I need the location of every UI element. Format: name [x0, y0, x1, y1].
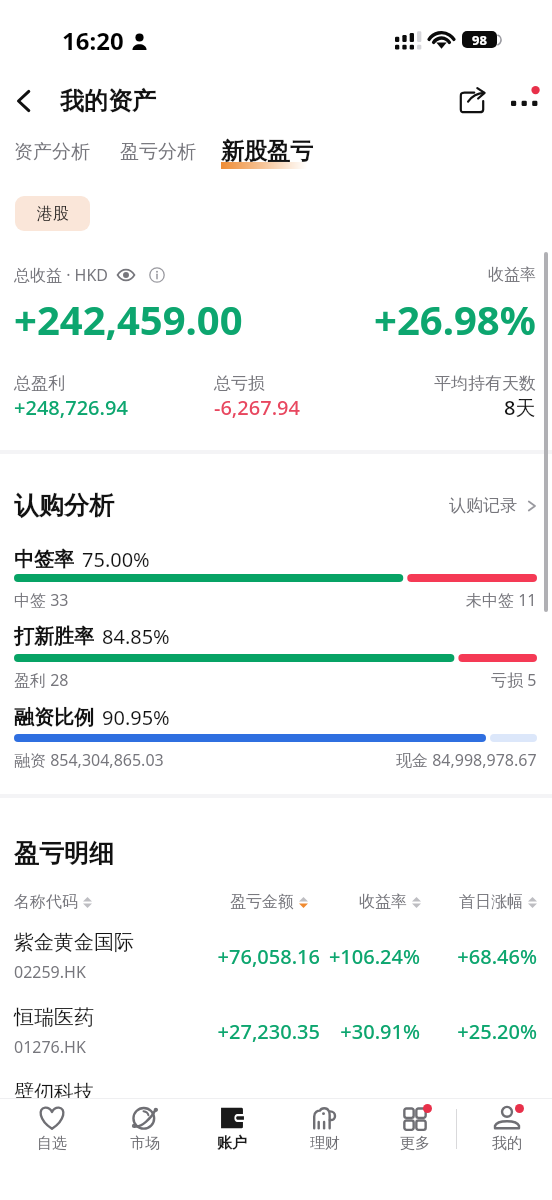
- button[interactable]: 自选: [12, 1098, 92, 1153]
- staticText: +76,058.16: [192, 943, 320, 970]
- staticText: 总收益 · HKD: [14, 264, 109, 286]
- staticText: +106.24%: [320, 943, 420, 970]
- staticText: 02252.HK: [14, 1111, 86, 1133]
- staticText: 融资 854,304,865.03: [14, 749, 164, 771]
- staticText: +30.91%: [320, 1018, 420, 1045]
- button[interactable]: 新股盈亏: [221, 137, 313, 168]
- staticText: 总盈利: [14, 373, 65, 394]
- button[interactable]: 收益率: [308, 892, 421, 912]
- staticText: 紫金黄金国际: [14, 930, 134, 955]
- staticText: 融资比例: [14, 705, 94, 730]
- staticText: 恒瑞医药: [14, 1005, 94, 1030]
- staticText: +248,726.94: [14, 394, 128, 421]
- staticText: 亏损 5: [491, 669, 537, 691]
- button[interactable]: Info: [149, 267, 165, 283]
- staticText: 认购分析: [14, 490, 114, 521]
- staticText: 我的资产: [60, 86, 156, 116]
- staticText: 90.95%: [102, 704, 170, 731]
- staticText: 收益率: [488, 265, 536, 285]
- staticText: 我的: [492, 1134, 522, 1153]
- button[interactable]: 紫金黄金国际: [0, 919, 552, 994]
- staticText: 中签率: [14, 547, 74, 572]
- button[interactable]: 恒瑞医药: [0, 994, 552, 1069]
- staticText: +24,688.00: [192, 1093, 320, 1120]
- staticText: 资产分析: [14, 140, 90, 164]
- button[interactable]: 壁仞科技: [0, 1069, 552, 1144]
- button[interactable]: 首日涨幅: [421, 892, 537, 912]
- staticText: +18.35%: [320, 1093, 420, 1120]
- staticText: -6,267.94: [214, 394, 300, 421]
- staticText: +27,230.35: [192, 1018, 320, 1045]
- button[interactable]: 盈亏分析: [120, 134, 196, 170]
- staticText: 港股: [37, 204, 69, 224]
- staticText: +26.98%: [374, 292, 536, 346]
- staticText: 新股盈亏: [221, 137, 313, 166]
- staticText: +68.46%: [420, 943, 537, 970]
- button[interactable]: 盈亏金额: [184, 892, 308, 912]
- button[interactable]: 更多: [375, 1098, 455, 1153]
- button[interactable]: 资产分析: [14, 134, 90, 170]
- button[interactable]: 认购记录: [449, 495, 537, 516]
- staticText: 盈亏明细: [14, 838, 114, 869]
- staticText: 更多: [400, 1134, 430, 1153]
- staticText: 总亏损: [214, 373, 265, 394]
- button[interactable]: 名称代码: [14, 892, 184, 912]
- button[interactable]: More options: [500, 77, 548, 125]
- staticText: 自选: [37, 1134, 67, 1153]
- staticText: 理财: [310, 1134, 340, 1153]
- button[interactable]: 港股: [15, 196, 90, 231]
- staticText: 中签 33: [14, 589, 69, 611]
- button[interactable]: Share: [448, 77, 496, 125]
- button[interactable]: Back: [0, 77, 48, 125]
- staticText: 01276.HK: [14, 1036, 86, 1058]
- staticText: 未中签 11: [466, 589, 537, 611]
- button[interactable]: 我的: [467, 1098, 547, 1153]
- staticText: 盈亏分析: [120, 140, 196, 164]
- staticText: 壁仞科技: [14, 1080, 94, 1105]
- button[interactable]: 理财: [285, 1098, 365, 1153]
- button[interactable]: 市场: [105, 1098, 185, 1153]
- staticText: 盈亏金额: [230, 892, 294, 912]
- staticText: 16:20: [62, 24, 124, 57]
- staticText: 认购记录: [449, 495, 517, 516]
- staticText: 名称代码: [14, 892, 78, 912]
- staticText: 收益率: [359, 892, 407, 912]
- staticText: 75.00%: [82, 546, 150, 573]
- staticText: 平均持有天数: [434, 373, 536, 394]
- staticText: 盈利 28: [14, 669, 69, 691]
- staticText: +12.10%: [420, 1093, 537, 1120]
- staticText: 98: [472, 31, 487, 48]
- staticText: 首日涨幅: [459, 892, 523, 912]
- staticText: 账户: [217, 1134, 247, 1153]
- staticText: 8天: [504, 394, 536, 421]
- staticText: 打新胜率: [14, 624, 94, 649]
- button[interactable]: 账户: [192, 1098, 272, 1153]
- staticText: 02259.HK: [14, 961, 86, 983]
- staticText: 84.85%: [102, 623, 170, 650]
- button[interactable]: Toggle visibility: [117, 266, 135, 284]
- staticText: +242,459.00: [14, 292, 243, 346]
- staticText: +25.20%: [420, 1018, 537, 1045]
- staticText: 现金 84,998,978.67: [396, 749, 537, 771]
- staticText: 市场: [130, 1134, 160, 1153]
